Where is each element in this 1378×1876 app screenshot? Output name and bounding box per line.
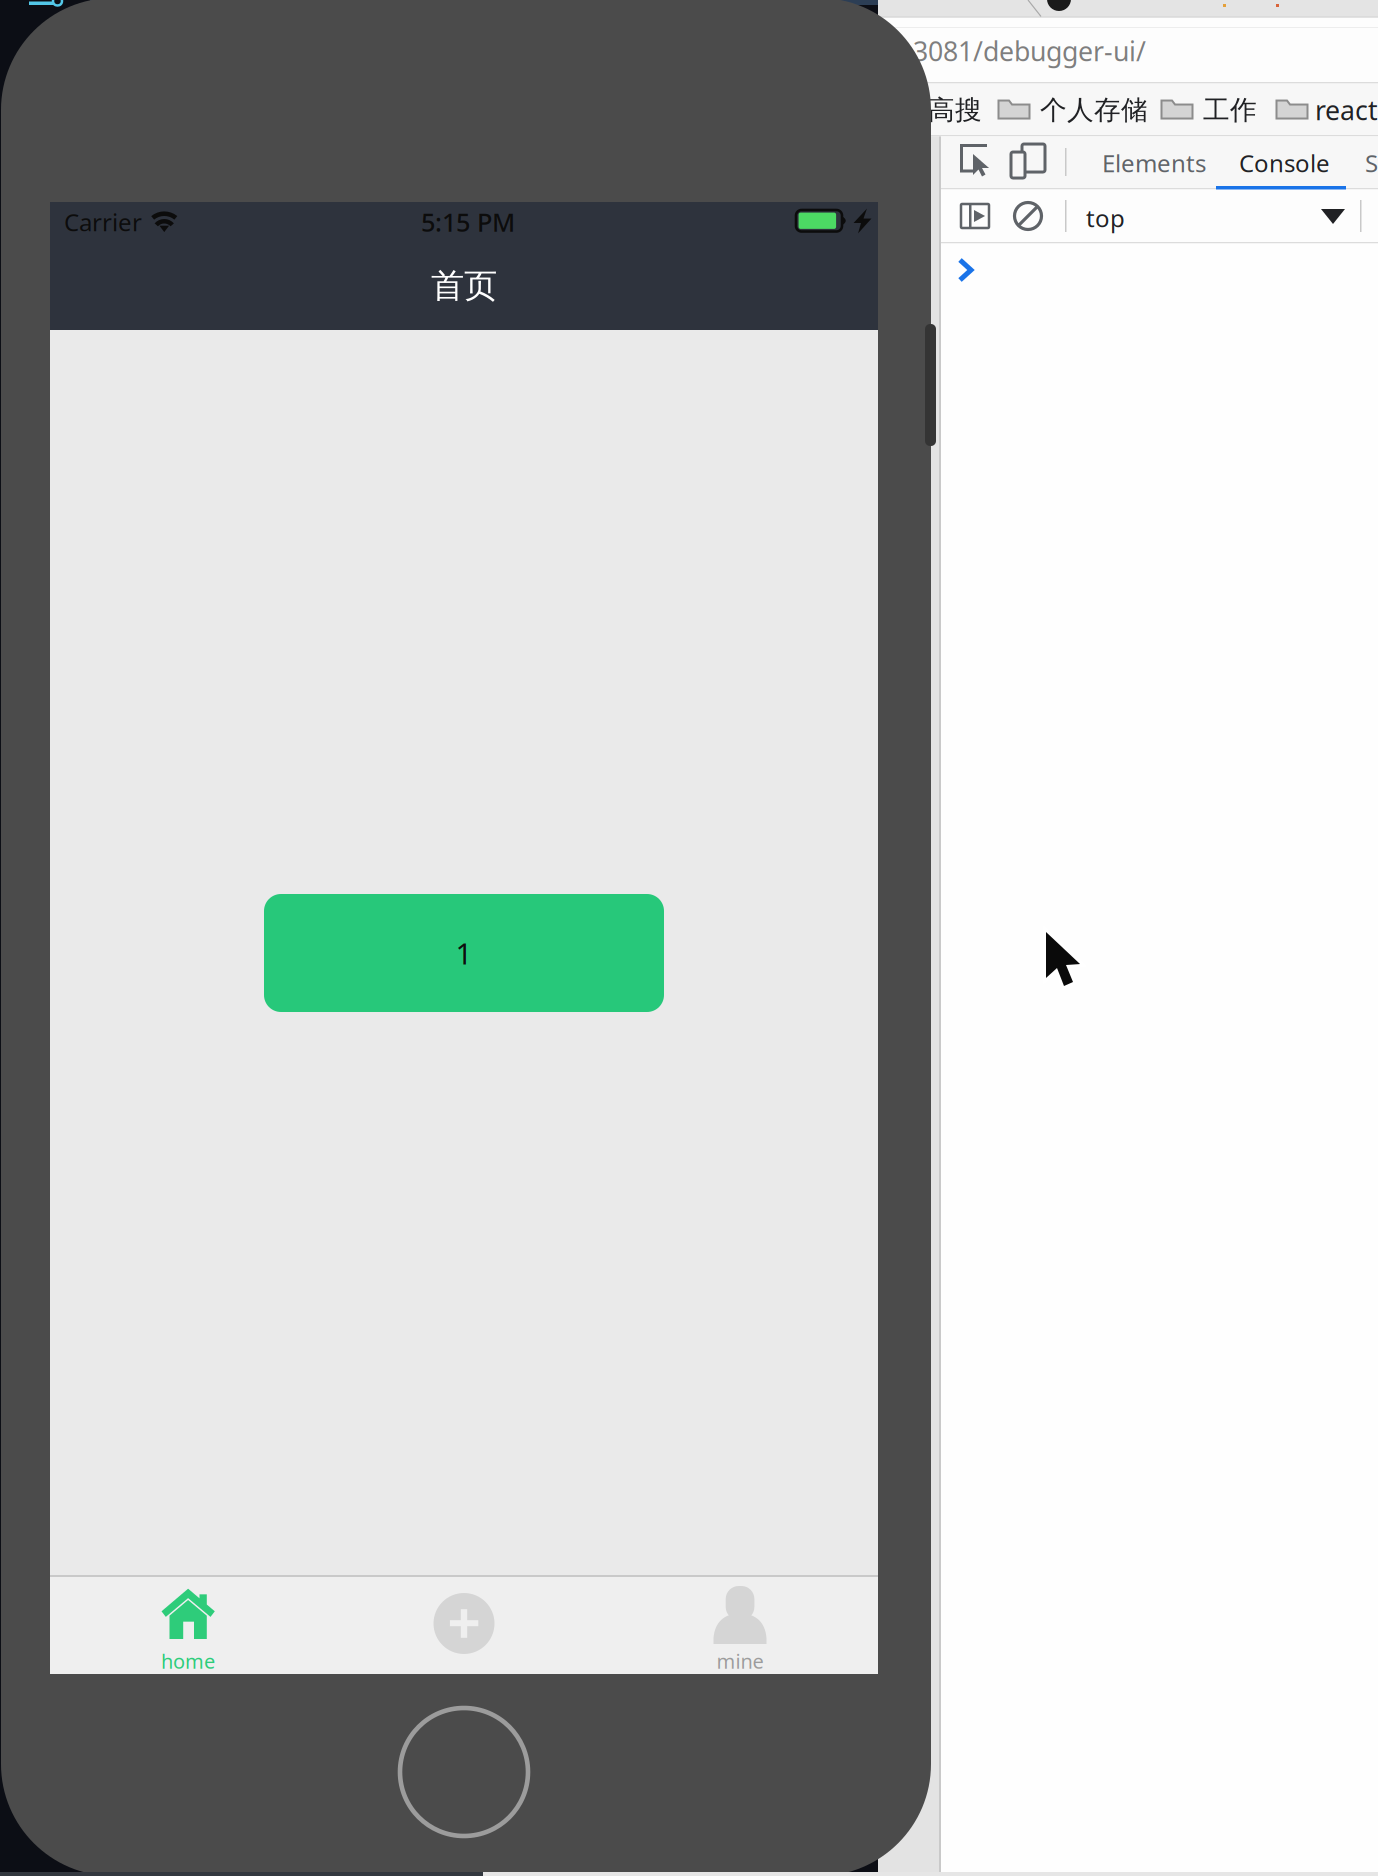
button[interactable]: 1	[264, 894, 664, 1012]
staticText: react	[1315, 92, 1378, 128]
staticText: 工作	[1203, 94, 1257, 126]
staticText: 首页	[431, 265, 497, 306]
staticText: Console	[1239, 147, 1330, 179]
staticText: 1	[455, 933, 472, 972]
staticText: 5:15 PM	[421, 205, 515, 239]
staticText: mine	[716, 1648, 763, 1674]
staticText: Carrier	[64, 206, 142, 238]
staticText: Elements	[1102, 147, 1206, 179]
button[interactable]: mine	[602, 1577, 878, 1674]
button[interactable]: Add	[326, 1577, 602, 1674]
staticText: S	[1365, 147, 1378, 179]
staticText: 高搜	[928, 94, 982, 126]
staticText: home	[161, 1648, 215, 1674]
staticText: top	[1086, 202, 1125, 234]
button[interactable]: home	[50, 1577, 326, 1674]
staticText: 3081/debugger-ui/	[913, 33, 1146, 69]
staticText: 个人存储	[1040, 94, 1148, 126]
